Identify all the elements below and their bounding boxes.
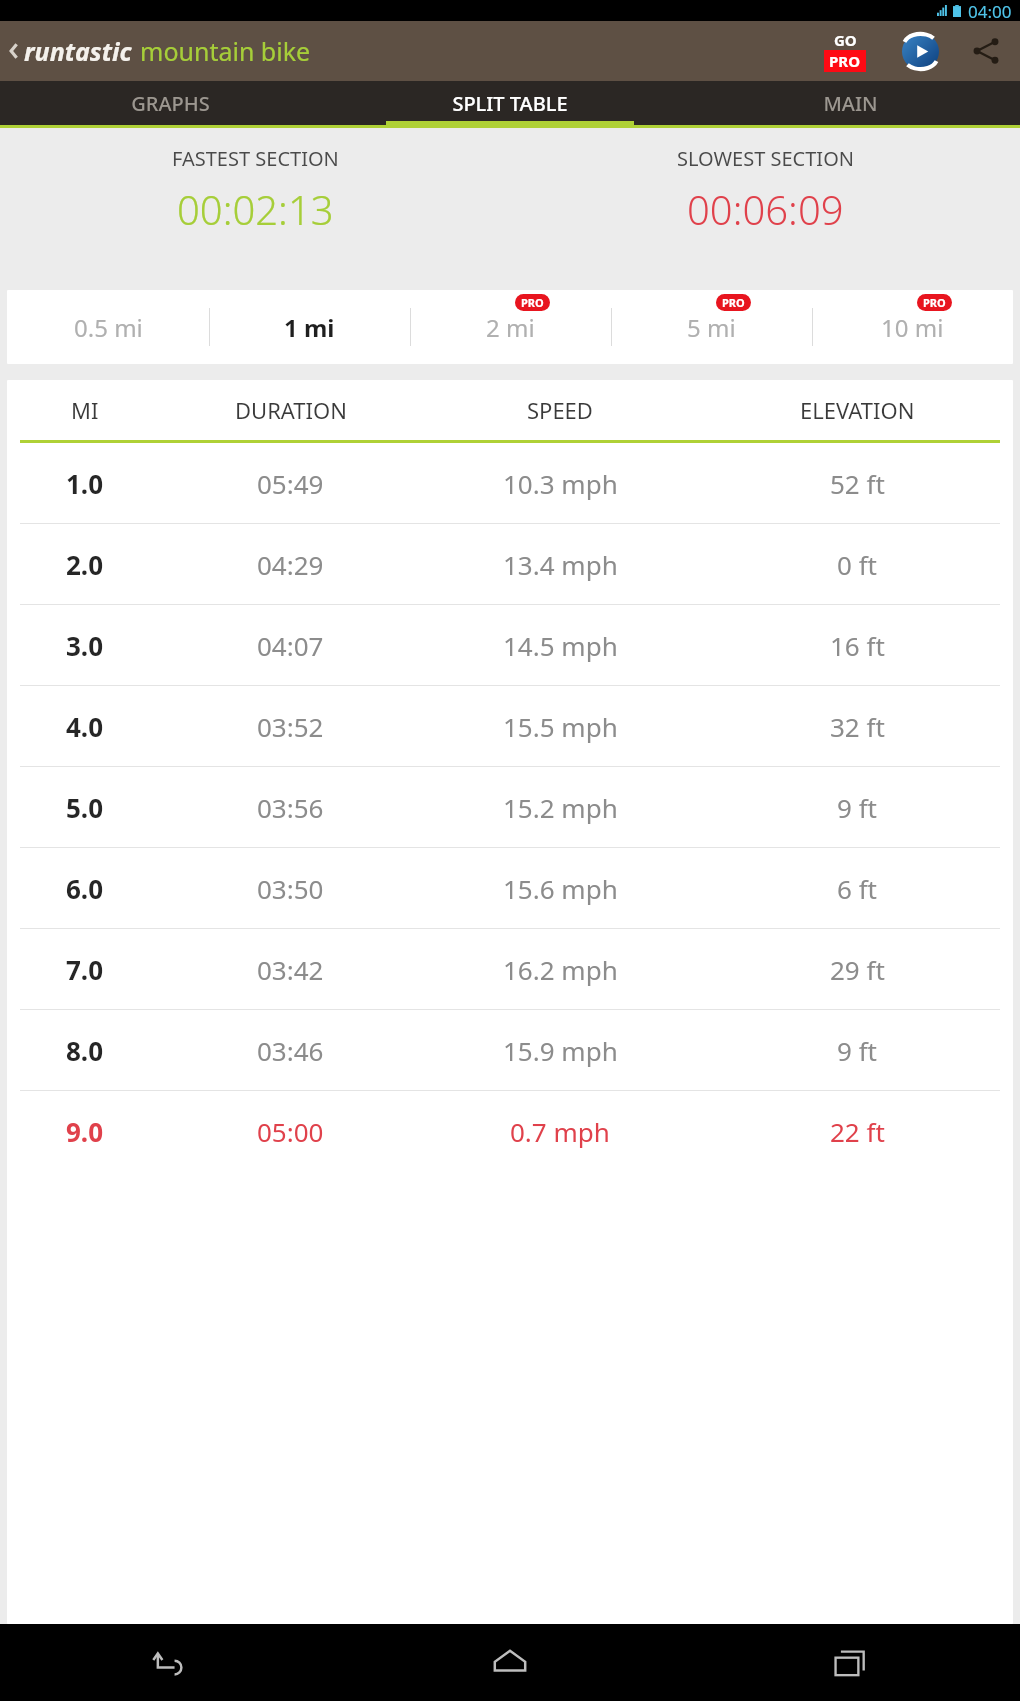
staticText: 52 ft xyxy=(830,466,885,501)
button[interactable]: 0.5 mi xyxy=(7,290,209,364)
staticText: DURATION xyxy=(235,395,347,425)
staticText: 3.0 xyxy=(66,628,104,663)
staticText: 04:29 xyxy=(257,547,324,582)
staticText: 00:06:09 xyxy=(687,182,844,236)
staticText: 00:02:13 xyxy=(177,182,334,236)
staticText: 03:56 xyxy=(257,790,324,825)
button[interactable]: 1 mi xyxy=(209,290,410,364)
staticText: 16.2 mph xyxy=(503,952,618,987)
staticText: GO xyxy=(834,30,857,50)
staticText: 15.6 mph xyxy=(503,871,618,906)
staticText: 04:00 xyxy=(968,0,1012,21)
staticText: 10 mi xyxy=(881,311,944,344)
staticText: MAIN xyxy=(823,90,878,117)
button[interactable]: 2.0 xyxy=(7,524,1013,604)
button[interactable]: 8.0 xyxy=(7,1010,1013,1090)
staticText: mountain bike xyxy=(140,34,311,68)
staticText: 05:00 xyxy=(257,1114,324,1149)
staticText: 03:46 xyxy=(257,1033,324,1068)
staticText: 14.5 mph xyxy=(503,628,618,663)
staticText: ELEVATION xyxy=(800,395,915,425)
staticText: 22 ft xyxy=(830,1114,885,1149)
staticText: 03:42 xyxy=(257,952,324,987)
staticText: 05:49 xyxy=(257,466,324,501)
staticText: 04:07 xyxy=(257,628,324,663)
staticText: 7.0 xyxy=(66,952,104,987)
button[interactable]: Go Pro xyxy=(818,26,872,76)
button[interactable]: MAIN xyxy=(680,81,1020,125)
staticText: 9 ft xyxy=(837,1033,877,1068)
staticText: 32 ft xyxy=(830,709,885,744)
staticText: 29 ft xyxy=(830,952,885,987)
button[interactable]: Share xyxy=(962,27,1010,75)
button[interactable]: 5 mi xyxy=(611,290,812,364)
button[interactable]: Runtastic globe xyxy=(898,29,942,73)
staticText: 03:52 xyxy=(257,709,324,744)
staticText: 03:50 xyxy=(257,871,324,906)
button[interactable]: 3.0 xyxy=(7,605,1013,685)
button[interactable]: GRAPHS xyxy=(0,81,340,125)
staticText: 1 mi xyxy=(284,311,335,344)
staticText: 5 mi xyxy=(687,311,736,344)
staticText: MI xyxy=(71,395,99,425)
button[interactable]: 6.0 xyxy=(7,848,1013,928)
staticText: 4.0 xyxy=(66,709,104,744)
staticText: PRO xyxy=(521,295,544,310)
staticText: 10.3 mph xyxy=(503,466,618,501)
button[interactable]: 1.0 xyxy=(7,443,1013,523)
staticText: 0 ft xyxy=(837,547,877,582)
staticText: 5.0 xyxy=(66,790,104,825)
staticText: GRAPHS xyxy=(131,90,210,117)
button[interactable]: Recent apps xyxy=(680,1624,1020,1701)
button[interactable]: 2 mi xyxy=(410,290,611,364)
button[interactable]: SPLIT TABLE xyxy=(340,81,680,125)
staticText: 15.9 mph xyxy=(503,1033,618,1068)
staticText: 1.0 xyxy=(66,466,104,501)
staticText: 2.0 xyxy=(66,547,104,582)
staticText: PRO xyxy=(829,51,861,71)
staticText: 13.4 mph xyxy=(503,547,618,582)
button[interactable]: 4.0 xyxy=(7,686,1013,766)
staticText: runtastic xyxy=(24,34,132,68)
staticText: SPLIT TABLE xyxy=(452,90,568,117)
staticText: 16 ft xyxy=(830,628,885,663)
staticText: 6.0 xyxy=(66,871,104,906)
button[interactable]: Home xyxy=(340,1624,680,1701)
staticText: 8.0 xyxy=(66,1033,104,1068)
button[interactable]: 10 mi xyxy=(812,290,1013,364)
staticText: 0.7 mph xyxy=(510,1114,610,1149)
staticText: 0.5 mi xyxy=(74,311,143,344)
button[interactable]: 7.0 xyxy=(7,929,1013,1009)
button[interactable]: Back xyxy=(0,1624,340,1701)
staticText: 15.5 mph xyxy=(503,709,618,744)
staticText: 15.2 mph xyxy=(503,790,618,825)
staticText: 2 mi xyxy=(486,311,535,344)
staticText: PRO xyxy=(722,295,745,310)
staticText: FASTEST SECTION xyxy=(172,145,339,172)
button[interactable]: 9.0 xyxy=(7,1091,1013,1171)
staticText: PRO xyxy=(923,295,946,310)
staticText: SLOWEST SECTION xyxy=(677,145,854,172)
staticText: 6 ft xyxy=(837,871,877,906)
button[interactable]: 5.0 xyxy=(7,767,1013,847)
button[interactable]: runtastic xyxy=(4,28,315,74)
staticText: 9 ft xyxy=(837,790,877,825)
staticText: 9.0 xyxy=(66,1114,104,1149)
staticText: SPEED xyxy=(527,395,593,425)
